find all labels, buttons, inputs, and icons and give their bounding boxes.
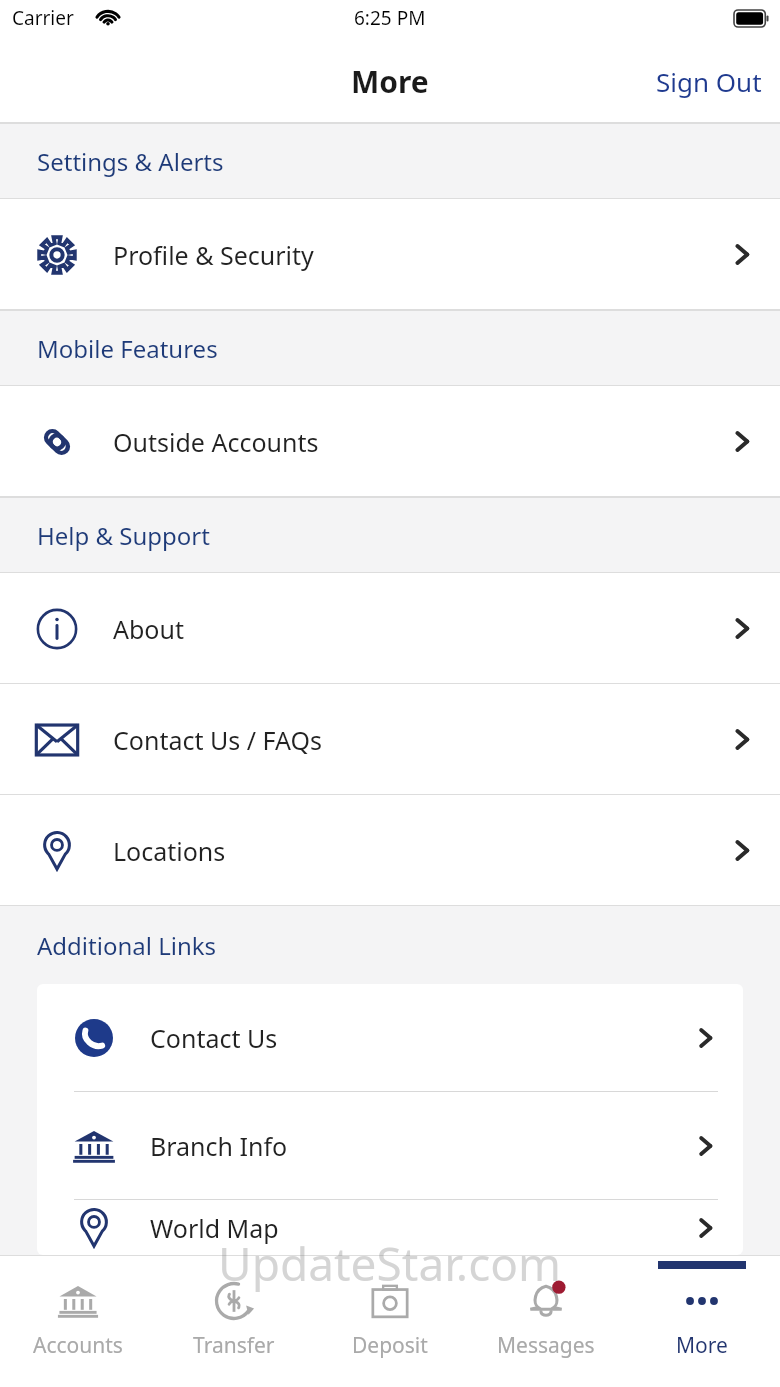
staticText: Locations xyxy=(113,834,702,868)
staticText: Contact Us xyxy=(150,1021,667,1055)
staticText: Profile & Security xyxy=(113,238,702,272)
staticText: Deposit xyxy=(352,1331,428,1360)
staticText: Outside Accounts xyxy=(113,425,702,459)
staticText: Contact Us / FAQs xyxy=(113,723,702,757)
button[interactable]: Branch Info xyxy=(37,1092,743,1199)
staticText: Messages xyxy=(497,1331,595,1360)
staticText: Carrier xyxy=(12,5,74,31)
staticText: Settings & Alerts xyxy=(37,145,224,178)
staticText: More xyxy=(351,61,429,102)
staticText: 6:25 PM xyxy=(354,5,426,31)
staticText: Transfer xyxy=(193,1331,275,1360)
staticText: Additional Links xyxy=(37,929,217,962)
staticText: More xyxy=(676,1331,728,1360)
staticText: About xyxy=(113,612,702,646)
button[interactable]: Locations xyxy=(0,795,780,906)
button[interactable]: Sign Out xyxy=(638,50,780,113)
button[interactable]: About xyxy=(0,573,780,684)
staticText: Sign Out xyxy=(656,64,762,99)
button[interactable]: Contact Us xyxy=(37,984,743,1091)
staticText: Mobile Features xyxy=(37,332,218,365)
button[interactable]: Messages xyxy=(468,1255,624,1387)
button[interactable]: Outside Accounts xyxy=(0,386,780,497)
button[interactable]: Contact Us / FAQs xyxy=(0,684,780,795)
staticText: Help & Support xyxy=(37,519,210,552)
button[interactable]: Transfer xyxy=(156,1255,312,1387)
button[interactable]: Profile & Security xyxy=(0,199,780,310)
staticText: World Map xyxy=(150,1211,667,1245)
button[interactable]: World Map xyxy=(37,1200,743,1255)
button[interactable]: Accounts xyxy=(0,1255,156,1387)
staticText: Branch Info xyxy=(150,1129,667,1163)
staticText: UpdateStar.com xyxy=(218,1232,562,1295)
staticText: Accounts xyxy=(33,1331,123,1360)
button[interactable]: More xyxy=(624,1255,780,1387)
button[interactable]: Deposit xyxy=(312,1255,468,1387)
